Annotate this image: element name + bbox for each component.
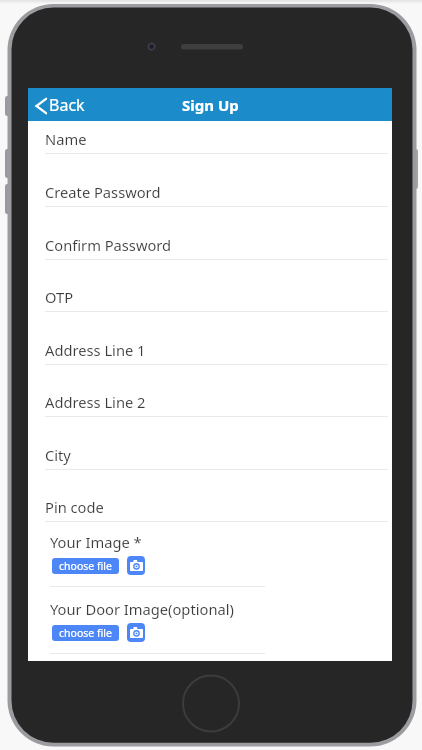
staticText: Pin code <box>45 497 104 517</box>
staticText: Address Line 1 <box>45 340 146 360</box>
button[interactable]: Address Line 2 <box>28 385 392 417</box>
staticText: Back <box>49 94 85 116</box>
staticText: choose file <box>59 626 112 640</box>
button[interactable]: City <box>28 438 392 470</box>
button[interactable]: OTP <box>28 280 392 312</box>
staticText: Sign Up <box>182 95 239 115</box>
button[interactable]: choose file <box>52 558 119 574</box>
staticText: OTP <box>45 287 74 307</box>
button[interactable]: Name <box>28 122 392 154</box>
staticText: Your Image * <box>50 532 142 552</box>
staticText: City <box>45 445 71 465</box>
button[interactable]: choose file <box>52 625 119 641</box>
button[interactable]: Create Password <box>28 175 392 207</box>
staticText: Create Password <box>45 182 161 202</box>
button[interactable]: Take photo <box>127 556 145 575</box>
staticText: choose file <box>59 559 112 573</box>
staticText: Confirm Password <box>45 235 172 255</box>
button[interactable]: Address Line 1 <box>28 333 392 365</box>
staticText: Your Door Image(optional) <box>50 599 234 619</box>
button[interactable]: Back <box>35 88 85 121</box>
button[interactable]: Pin code <box>28 490 392 522</box>
staticText: Name <box>45 129 87 149</box>
button[interactable]: Take photo <box>127 623 145 642</box>
button[interactable]: Confirm Password <box>28 228 392 260</box>
staticText: Address Line 2 <box>45 392 146 412</box>
